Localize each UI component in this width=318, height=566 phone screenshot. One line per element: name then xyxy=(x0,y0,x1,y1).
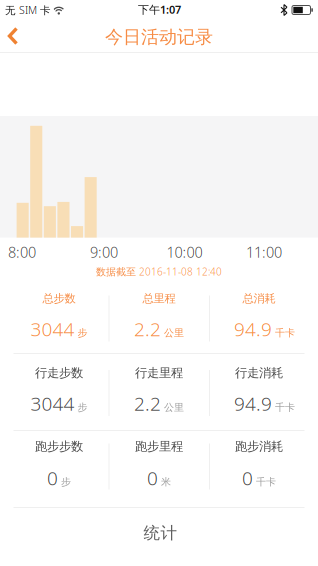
staticText: 千卡 xyxy=(256,476,276,488)
staticText: 94.9 xyxy=(234,391,272,416)
staticText: 千卡 xyxy=(275,327,295,339)
staticText: 94.9 xyxy=(234,316,272,342)
button[interactable]: Back xyxy=(0,20,34,52)
staticText: 跑步里程 xyxy=(135,439,183,454)
staticText: 跑步步数 xyxy=(35,439,83,454)
staticText: 9:00 xyxy=(90,242,118,262)
staticText: 公里 xyxy=(164,327,184,339)
staticText: 2.2 xyxy=(134,316,161,342)
staticText: 公里 xyxy=(164,401,184,414)
staticText: 步 xyxy=(61,476,71,488)
staticText: 总步数 xyxy=(42,291,75,306)
staticText: 3044 xyxy=(30,316,74,342)
staticText: 行走步数 xyxy=(35,365,83,381)
staticText: 0 xyxy=(242,465,253,491)
staticText: 2.2 xyxy=(134,391,161,416)
staticText: 米 xyxy=(161,476,171,488)
staticText: 11:00 xyxy=(246,242,282,262)
staticText: 步 xyxy=(77,327,87,339)
staticText: 跑步消耗 xyxy=(235,439,283,454)
button[interactable]: 统计 xyxy=(125,519,195,547)
staticText: 今日活动记录 xyxy=(105,26,213,48)
staticText: 步 xyxy=(77,401,87,414)
staticText: 统计 xyxy=(143,523,177,543)
staticText: 3044 xyxy=(30,391,74,416)
staticText: 8:00 xyxy=(8,242,36,262)
staticText: 总里程 xyxy=(142,291,175,306)
staticText: 数据截至 2016-11-08 12:40 xyxy=(96,265,222,278)
staticText: 千卡 xyxy=(275,401,295,414)
staticText: 下午1:07 xyxy=(138,2,181,17)
staticText: 0 xyxy=(47,465,58,491)
staticText: 行走消耗 xyxy=(235,365,283,381)
staticText: 总消耗 xyxy=(242,291,275,306)
staticText: 0 xyxy=(147,465,158,491)
staticText: 无 SIM 卡 xyxy=(5,3,51,17)
staticText: 10:00 xyxy=(166,242,202,262)
staticText: 行走里程 xyxy=(135,365,183,381)
